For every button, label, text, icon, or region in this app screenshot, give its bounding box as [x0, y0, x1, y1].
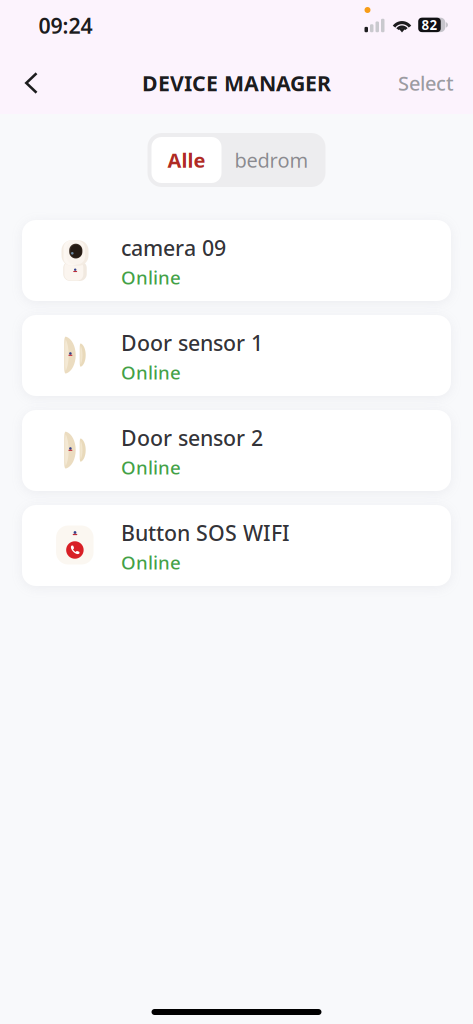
- button[interactable]: Button SOS WIFI: [22, 505, 451, 586]
- staticText: DEVICE MANAGER: [142, 69, 331, 97]
- staticText: Select: [398, 70, 454, 96]
- button[interactable]: Door sensor 1: [22, 315, 451, 396]
- staticText: bedrom: [234, 147, 308, 173]
- button[interactable]: Alle: [151, 137, 221, 183]
- staticText: Online: [121, 550, 181, 575]
- button[interactable]: Back: [0, 60, 58, 106]
- button[interactable]: bedrom: [221, 137, 321, 183]
- staticText: Door sensor 2: [121, 423, 263, 452]
- staticText: Online: [121, 455, 181, 480]
- staticText: Door sensor 1: [121, 328, 263, 357]
- staticText: Online: [121, 265, 181, 290]
- button[interactable]: camera 09: [22, 220, 451, 301]
- staticText: Alle: [167, 147, 205, 173]
- staticText: 82: [421, 16, 437, 34]
- staticText: Online: [121, 360, 181, 385]
- staticText: camera 09: [121, 233, 226, 262]
- button[interactable]: Select: [382, 58, 473, 108]
- button[interactable]: Door sensor 2: [22, 410, 451, 491]
- staticText: Button SOS WIFI: [121, 518, 290, 547]
- staticText: 09:24: [38, 11, 92, 40]
